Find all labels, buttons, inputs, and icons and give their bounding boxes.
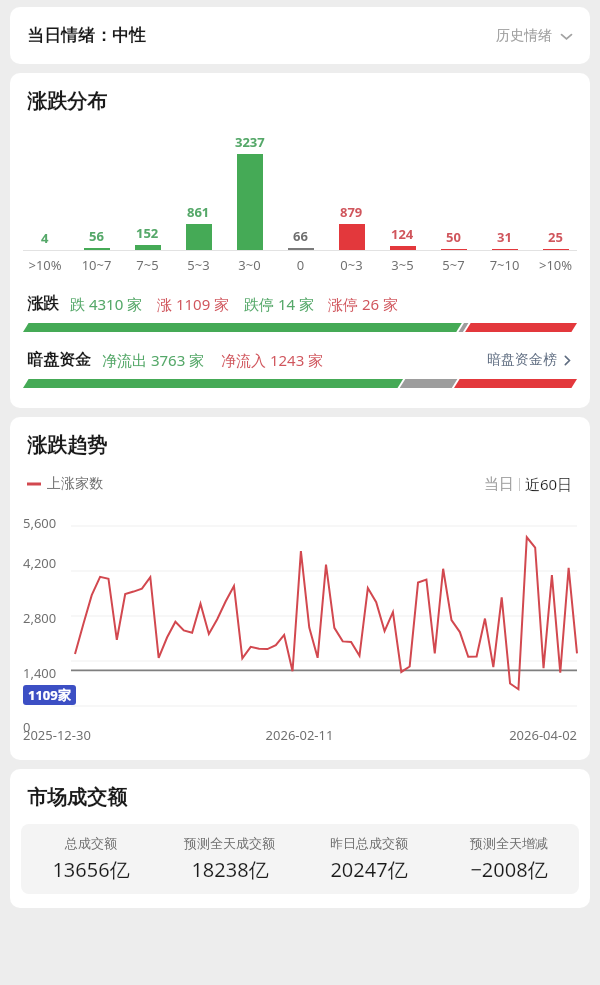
staticText: 4,200 xyxy=(23,554,57,572)
staticText: 124 xyxy=(391,225,414,243)
staticText: 历史情绪 xyxy=(496,27,552,45)
button[interactable]: 近60日 xyxy=(525,474,573,494)
staticText: 7~10 xyxy=(479,256,530,274)
button[interactable]: 暗盘资金榜 xyxy=(487,351,573,369)
staticText: 3~0 xyxy=(224,256,275,274)
button[interactable]: 3237 xyxy=(224,128,275,250)
button[interactable]: 879 xyxy=(326,128,377,250)
staticText: 当日情绪：中性 xyxy=(27,25,146,46)
staticText: 暗盘资金 xyxy=(27,350,91,370)
staticText: 1,400 xyxy=(23,664,57,682)
button[interactable]: 50 xyxy=(428,128,479,250)
button[interactable]: 预测全天增减 xyxy=(439,835,579,883)
staticText: 暗盘资金榜 xyxy=(487,351,557,369)
button[interactable]: 当日 xyxy=(484,475,514,494)
button[interactable]: 涨跌 xyxy=(27,294,573,314)
staticText: 净流出 3763 家 xyxy=(102,350,205,370)
staticText: 66 xyxy=(293,227,308,245)
button[interactable]: 31 xyxy=(479,128,530,250)
button[interactable]: 56 xyxy=(71,128,122,250)
staticText: −2008亿 xyxy=(470,856,548,883)
staticText: 2026-04-02 xyxy=(392,726,577,744)
staticText: 总成交额 xyxy=(65,835,117,851)
button[interactable]: 总成交额 xyxy=(21,835,160,883)
button[interactable]: 861 xyxy=(173,128,224,250)
staticText: 跌 4310 家 xyxy=(70,294,143,314)
button[interactable]: 预测全天成交额 xyxy=(160,835,299,883)
staticText: 净流入 1243 家 xyxy=(221,350,324,370)
staticText: 31 xyxy=(497,228,512,246)
button[interactable]: 152 xyxy=(122,128,173,250)
staticText: >10% xyxy=(19,256,71,274)
staticText: >10% xyxy=(530,256,581,274)
button[interactable]: 66 xyxy=(275,128,326,250)
staticText: 上涨家数 xyxy=(47,475,103,493)
staticText: 涨跌趋势 xyxy=(27,433,107,458)
staticText: 25 xyxy=(548,228,563,246)
button[interactable]: 4 xyxy=(19,128,71,250)
staticText: 0 xyxy=(23,718,31,736)
staticText: 152 xyxy=(136,224,159,242)
staticText: 5~7 xyxy=(428,256,479,274)
staticText: 7~5 xyxy=(122,256,173,274)
staticText: 0~3 xyxy=(326,256,377,274)
staticText: 4 xyxy=(41,229,49,247)
staticText: 5~3 xyxy=(173,256,224,274)
button[interactable]: 当日情绪：中性 xyxy=(10,7,590,64)
staticText: 近60日 xyxy=(525,474,573,494)
button[interactable]: 昨日总成交额 xyxy=(299,835,439,883)
staticText: 昨日总成交额 xyxy=(330,835,408,851)
staticText: 市场成交额 xyxy=(27,785,127,810)
staticText: 20247亿 xyxy=(330,856,408,883)
staticText: 13656亿 xyxy=(52,856,130,883)
staticText: 5,600 xyxy=(23,514,57,532)
staticText: 预测全天增减 xyxy=(470,835,548,851)
button[interactable]: 25 xyxy=(530,128,581,250)
staticText: 涨停 26 家 xyxy=(328,294,398,314)
staticText: 当日 xyxy=(484,475,514,494)
staticText: 3~5 xyxy=(377,256,428,274)
staticText: 18238亿 xyxy=(191,856,269,883)
staticText: 0 xyxy=(275,256,326,274)
staticText: 涨 1109 家 xyxy=(157,294,230,314)
staticText: 861 xyxy=(187,203,210,221)
staticText: 2026-02-11 xyxy=(207,726,392,744)
staticText: 2025-12-30 xyxy=(23,726,207,744)
staticText: 预测全天成交额 xyxy=(184,835,275,851)
staticText: 2,800 xyxy=(23,609,57,627)
staticText: 跌停 14 家 xyxy=(244,294,314,314)
staticText: 879 xyxy=(340,203,363,221)
staticText: 1109家 xyxy=(28,686,71,704)
staticText: 56 xyxy=(89,227,104,245)
button[interactable]: 历史情绪 xyxy=(496,27,573,45)
staticText: 10~7 xyxy=(71,256,122,274)
staticText: 涨跌 xyxy=(27,294,59,314)
staticText: 3237 xyxy=(235,133,265,151)
staticText: 涨跌分布 xyxy=(27,89,107,114)
button[interactable]: 124 xyxy=(377,128,428,250)
staticText: 50 xyxy=(446,228,461,246)
